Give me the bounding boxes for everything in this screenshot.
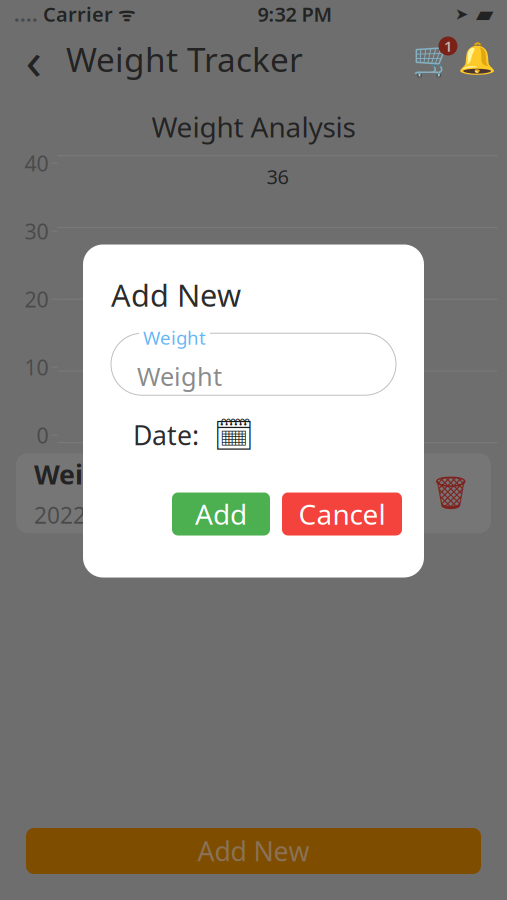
staticText: ‹ <box>25 24 42 94</box>
staticText: 🗓 <box>213 417 254 453</box>
staticText: 🛒 <box>411 39 454 79</box>
button[interactable]: Back <box>8 31 60 87</box>
staticText: Weight Analysis <box>151 108 355 145</box>
staticText: ▰ <box>468 1 493 27</box>
staticText: .... <box>14 1 38 27</box>
button[interactable]: Cart <box>411 31 455 87</box>
staticText: 🗑 <box>430 475 471 511</box>
staticText: ➤ <box>455 5 468 23</box>
staticText: Weight <box>143 325 206 350</box>
button[interactable]: Add <box>172 492 270 535</box>
staticText: 9:32 PM <box>257 1 332 27</box>
staticText: Add New <box>111 274 241 315</box>
staticText: Date: <box>133 417 199 453</box>
staticText: 2022-12-27 <box>34 500 152 530</box>
button[interactable]: Add New <box>26 828 481 874</box>
staticText: 10 <box>24 353 48 381</box>
staticText: 20 <box>24 285 48 313</box>
staticText: 30 <box>24 217 48 245</box>
staticText: Cancel <box>298 495 385 533</box>
staticText: Add <box>195 495 247 533</box>
staticText: ᯤ <box>113 2 135 26</box>
button[interactable]: Delete entry <box>429 471 473 515</box>
staticText: 40 <box>24 149 48 177</box>
staticText: 0 <box>36 421 48 449</box>
button[interactable]: Pick date <box>217 418 251 452</box>
staticText: 🔔 <box>458 41 496 76</box>
staticText: 36 <box>266 163 288 190</box>
staticText: 1 <box>444 36 452 56</box>
staticText: Weight Tracker <box>66 37 303 81</box>
staticText: Weight: 36 <box>34 456 173 492</box>
staticText: Carrier <box>38 1 113 27</box>
staticText: Add New <box>197 833 309 869</box>
staticText: Weight <box>137 359 222 393</box>
button[interactable]: Notifications <box>455 31 499 87</box>
button[interactable]: Cancel <box>282 492 402 535</box>
